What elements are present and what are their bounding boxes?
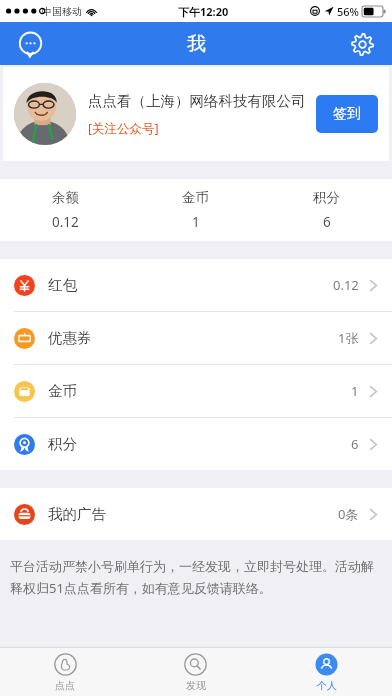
- button[interactable]: 积分: [261, 179, 392, 241]
- staticText: 红包: [48, 276, 77, 294]
- button[interactable]: 积分: [0, 418, 392, 470]
- staticText: 6: [323, 213, 331, 231]
- staticText: 0条: [338, 505, 359, 523]
- button[interactable]: 签到: [316, 95, 378, 133]
- staticText: 0.12: [333, 276, 359, 294]
- staticText: [关注公众号]: [88, 120, 159, 137]
- button[interactable]: [关注公众号]: [88, 120, 159, 137]
- staticText: 个人: [317, 679, 337, 692]
- staticText: 0.12: [52, 213, 79, 231]
- staticText: 下午12:20: [178, 4, 229, 19]
- button[interactable]: 点点看（上海）网络科技有限公司: [3, 67, 389, 161]
- staticText: 优惠券: [48, 329, 92, 347]
- staticText: 我的广告: [48, 505, 106, 523]
- staticText: 56%: [337, 4, 359, 19]
- button[interactable]: 发现: [130, 648, 261, 696]
- staticText: 点点: [55, 679, 75, 692]
- staticText: 点点看（上海）网络科技有限公司: [88, 92, 306, 110]
- staticText: 1: [351, 382, 359, 400]
- button[interactable]: 点点: [0, 648, 130, 696]
- staticText: 1: [192, 213, 200, 231]
- button[interactable]: Settings: [342, 24, 382, 64]
- staticText: 我: [187, 32, 206, 56]
- staticText: 积分: [48, 435, 77, 453]
- staticText: 积分: [313, 189, 340, 206]
- staticText: 平台活动严禁小号刷单行为，一经发现，立即封号处理。活动解释权归51点点看所有，如…: [10, 558, 382, 597]
- staticText: 中国移动: [42, 5, 82, 18]
- staticText: 金币: [182, 189, 209, 206]
- button[interactable]: 我的广告: [0, 488, 392, 540]
- button[interactable]: 红包: [0, 259, 392, 312]
- staticText: 1张: [338, 329, 359, 347]
- staticText: 6: [351, 435, 359, 453]
- button[interactable]: 余额: [0, 179, 130, 241]
- button[interactable]: 个人: [261, 648, 392, 696]
- staticText: 金币: [48, 382, 77, 400]
- staticText: 发现: [186, 679, 206, 692]
- button[interactable]: Messages: [10, 24, 50, 64]
- button[interactable]: 金币: [130, 179, 261, 241]
- staticText: 余额: [52, 189, 79, 206]
- staticText: 签到: [333, 105, 361, 123]
- button[interactable]: 优惠券: [0, 312, 392, 365]
- button[interactable]: 金币: [0, 365, 392, 418]
